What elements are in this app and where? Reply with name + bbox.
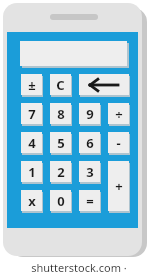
button[interactable]: 7 (21, 103, 42, 124)
staticText: ÷ (115, 105, 123, 123)
staticText: shutterstock.com · 2316446467 (0, 260, 158, 276)
button[interactable]: 1 (21, 161, 42, 182)
button[interactable]: ± (21, 74, 42, 95)
staticText: ± (28, 76, 36, 94)
button[interactable]: x (21, 190, 42, 211)
button[interactable]: 0 (50, 190, 71, 211)
staticText: + (115, 177, 123, 195)
staticText: - (116, 134, 121, 152)
staticText: C (56, 76, 65, 94)
staticText: 0 (57, 192, 65, 210)
button[interactable]: 9 (79, 103, 100, 124)
button[interactable]: 2 (50, 161, 71, 182)
button[interactable]: ÷ (108, 103, 129, 124)
staticText: 6 (86, 134, 94, 152)
staticText: 1 (28, 163, 36, 181)
staticText: 7 (28, 105, 36, 123)
staticText: = (86, 192, 94, 210)
button[interactable]: C (50, 74, 71, 95)
button[interactable]: 4 (21, 132, 42, 153)
staticText: 3 (86, 163, 94, 181)
staticText: 2 (57, 163, 65, 181)
staticText: 5 (57, 134, 65, 152)
button[interactable]: 8 (50, 103, 71, 124)
staticText: 4 (28, 134, 36, 152)
button[interactable]: + (108, 161, 129, 211)
button[interactable]: 5 (50, 132, 71, 153)
button[interactable]: - (108, 132, 129, 153)
button[interactable]: 3 (79, 161, 100, 182)
staticText: x (28, 192, 36, 210)
button[interactable]: 6 (79, 132, 100, 153)
staticText: 9 (86, 105, 94, 123)
button[interactable]: = (79, 190, 100, 211)
button[interactable]: Backspace (79, 74, 129, 95)
staticText: 8 (57, 105, 65, 123)
